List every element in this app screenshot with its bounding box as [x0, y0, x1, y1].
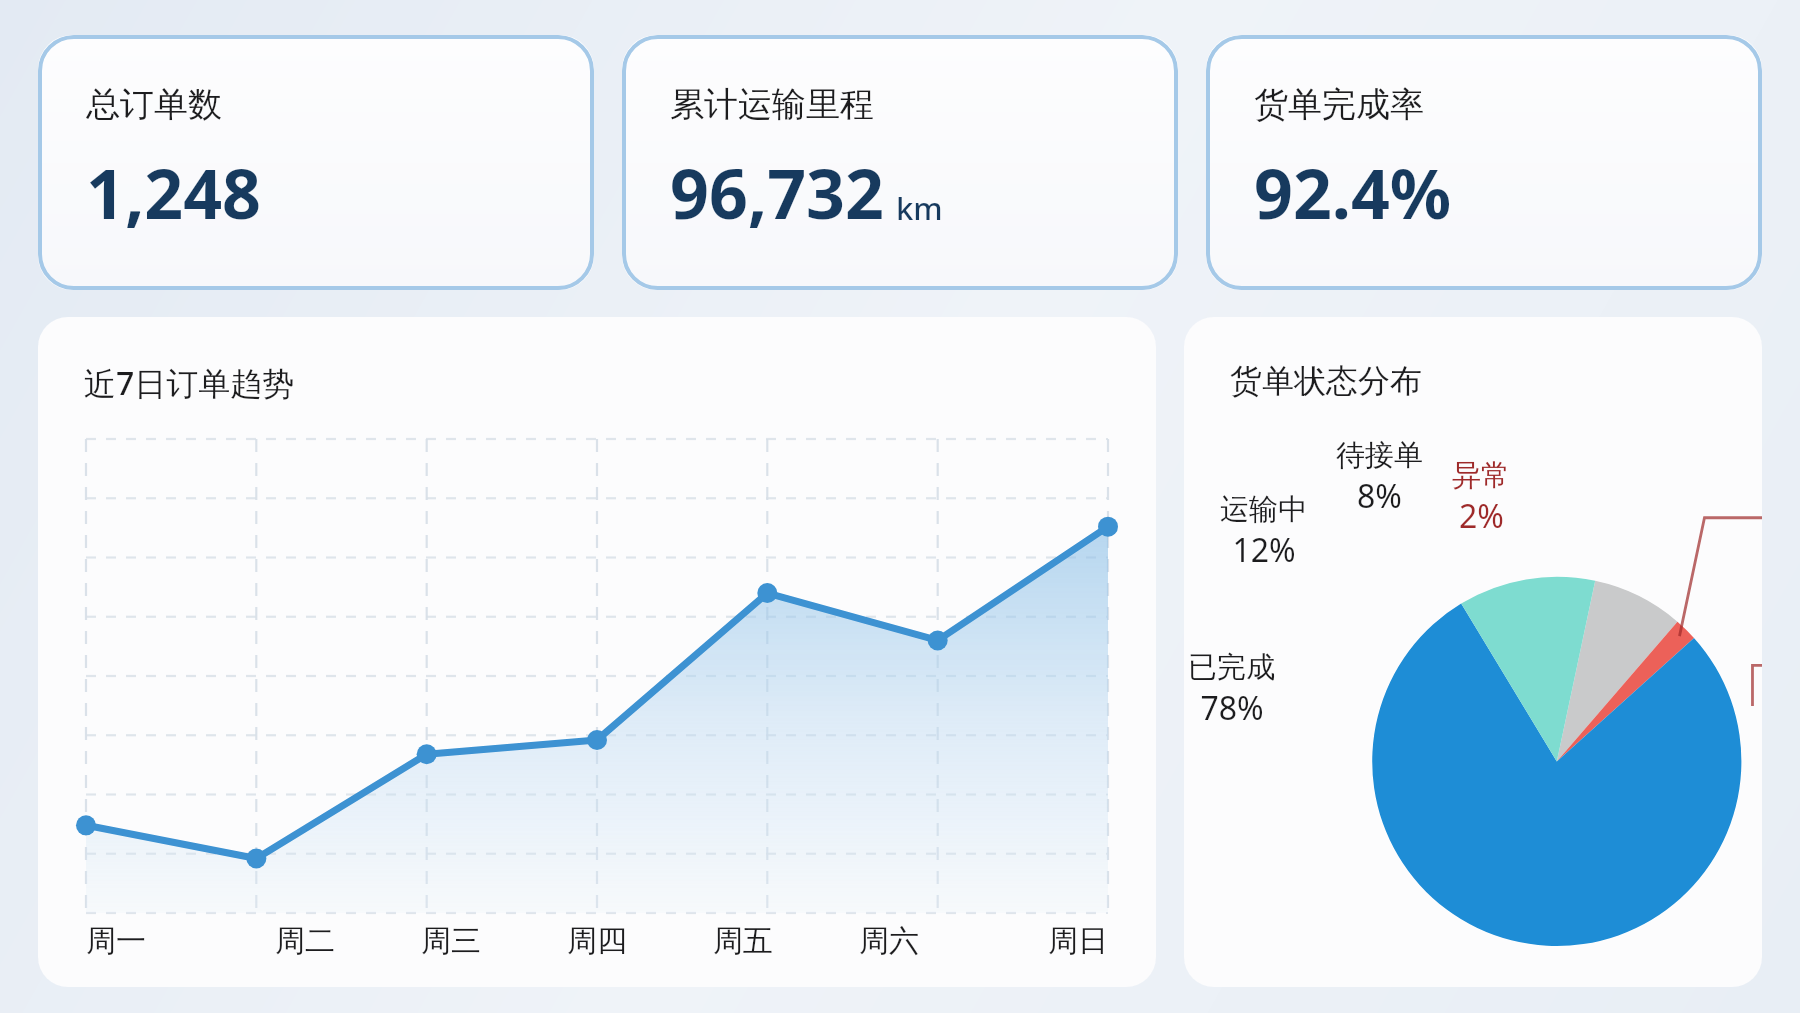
- staticText: 2%: [1459, 494, 1504, 538]
- other: 货单状态分布饼图: [1184, 401, 1762, 987]
- staticText: 周二: [275, 922, 335, 960]
- staticText: 货单状态分布: [1230, 361, 1422, 401]
- staticText: 8%: [1357, 474, 1402, 518]
- staticText: 12%: [1232, 528, 1296, 572]
- staticText: 周一: [86, 922, 146, 960]
- button[interactable]: 总订单数: [38, 35, 594, 290]
- staticText: km: [896, 187, 943, 229]
- staticText: 累计运输里程: [670, 83, 874, 126]
- staticText: 周日: [1048, 922, 1108, 960]
- staticText: 92.4%: [1254, 146, 1452, 239]
- staticText: 总订单数: [86, 83, 222, 126]
- staticText: 已完成: [1188, 649, 1275, 686]
- staticText: 96,732: [670, 146, 884, 239]
- staticText: 周三: [421, 922, 481, 960]
- staticText: 周六: [859, 922, 919, 960]
- button[interactable]: 货单完成率: [1206, 35, 1762, 290]
- staticText: 待接单: [1336, 437, 1423, 474]
- staticText: 78%: [1200, 686, 1264, 730]
- staticText: 运输中: [1220, 491, 1307, 528]
- staticText: 近7日订单趋势: [84, 361, 295, 405]
- button[interactable]: 货单状态分布: [1184, 317, 1762, 987]
- staticText: 1,248: [86, 146, 261, 239]
- button[interactable]: 累计运输里程: [622, 35, 1178, 290]
- staticText: 周四: [567, 922, 627, 960]
- staticText: 周五: [713, 922, 773, 960]
- button[interactable]: 近7日订单趋势: [38, 317, 1156, 987]
- staticText: 异常: [1452, 457, 1510, 494]
- staticText: 货单完成率: [1254, 83, 1424, 126]
